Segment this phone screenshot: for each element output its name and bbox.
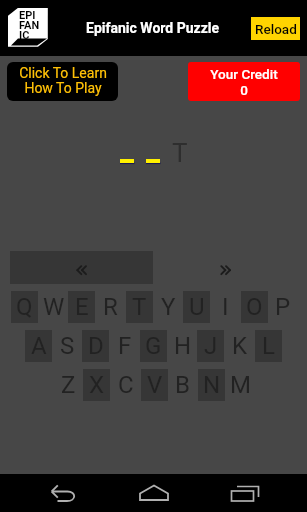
staticText: X [89, 371, 105, 399]
staticText: P [275, 293, 291, 321]
staticText: N [203, 371, 221, 399]
staticText: W [43, 293, 65, 321]
staticText: EPI FAN IC [19, 9, 40, 41]
staticText: J [204, 332, 218, 360]
button[interactable]: C [112, 369, 139, 401]
staticText: Z [61, 371, 76, 399]
button[interactable]: T [126, 291, 153, 323]
staticText: H [174, 332, 192, 360]
staticText: Reload [255, 21, 297, 37]
button[interactable]: S [54, 330, 81, 362]
staticText: A [31, 332, 47, 360]
staticText: M [230, 371, 251, 399]
staticText: K [232, 332, 248, 360]
staticText: Your Credit 0 [210, 66, 278, 98]
button[interactable]: J [197, 330, 224, 362]
button[interactable]: Q [11, 291, 38, 323]
button[interactable]: Y [155, 291, 182, 323]
staticText: F [118, 332, 132, 360]
button[interactable]: N [198, 369, 225, 401]
staticText: Y [161, 293, 176, 321]
button[interactable]: Z [55, 369, 82, 401]
button[interactable]: Recent apps [212, 474, 276, 512]
button[interactable]: R [97, 291, 124, 323]
button[interactable]: L [255, 330, 282, 362]
button[interactable]: F [111, 330, 138, 362]
button[interactable]: E [68, 291, 95, 323]
button[interactable]: K [226, 330, 253, 362]
button[interactable]: X [83, 369, 110, 401]
staticText: E [75, 293, 89, 321]
staticText: T [172, 138, 188, 168]
button[interactable]: Your Credit 0 [188, 62, 300, 101]
button[interactable]: Back [32, 474, 96, 512]
staticText: R [103, 293, 118, 321]
button[interactable]: O [241, 291, 268, 323]
button[interactable]: G [140, 330, 167, 362]
button[interactable]: B [169, 369, 196, 401]
button[interactable]: Click To Learn How To Play [7, 62, 118, 101]
button[interactable]: M [227, 369, 254, 401]
staticText: C [118, 371, 134, 399]
staticText: L [262, 332, 275, 360]
button[interactable]: Home [122, 474, 186, 512]
button[interactable]: V [141, 369, 168, 401]
button[interactable]: I [212, 291, 239, 323]
button[interactable]: U [183, 291, 210, 323]
staticText: U [189, 293, 205, 321]
button[interactable]: W [40, 291, 67, 323]
staticText: T [132, 293, 147, 321]
staticText: V [147, 371, 163, 399]
staticText: D [88, 332, 104, 360]
button[interactable]: H [169, 330, 196, 362]
staticText: G [145, 332, 162, 360]
button[interactable]: Reload [251, 17, 300, 40]
staticText: Epifanic Word Puzzle [86, 20, 220, 36]
button[interactable]: D [82, 330, 109, 362]
staticText: Click To Learn How To Play [19, 65, 107, 96]
button[interactable]: P [269, 291, 296, 323]
staticText: Q [16, 293, 33, 321]
staticText: O [246, 293, 263, 321]
staticText: B [175, 371, 190, 399]
staticText: S [60, 332, 75, 360]
staticText: I [222, 293, 229, 321]
button[interactable]: A [25, 330, 52, 362]
button[interactable]: Next [154, 251, 297, 284]
